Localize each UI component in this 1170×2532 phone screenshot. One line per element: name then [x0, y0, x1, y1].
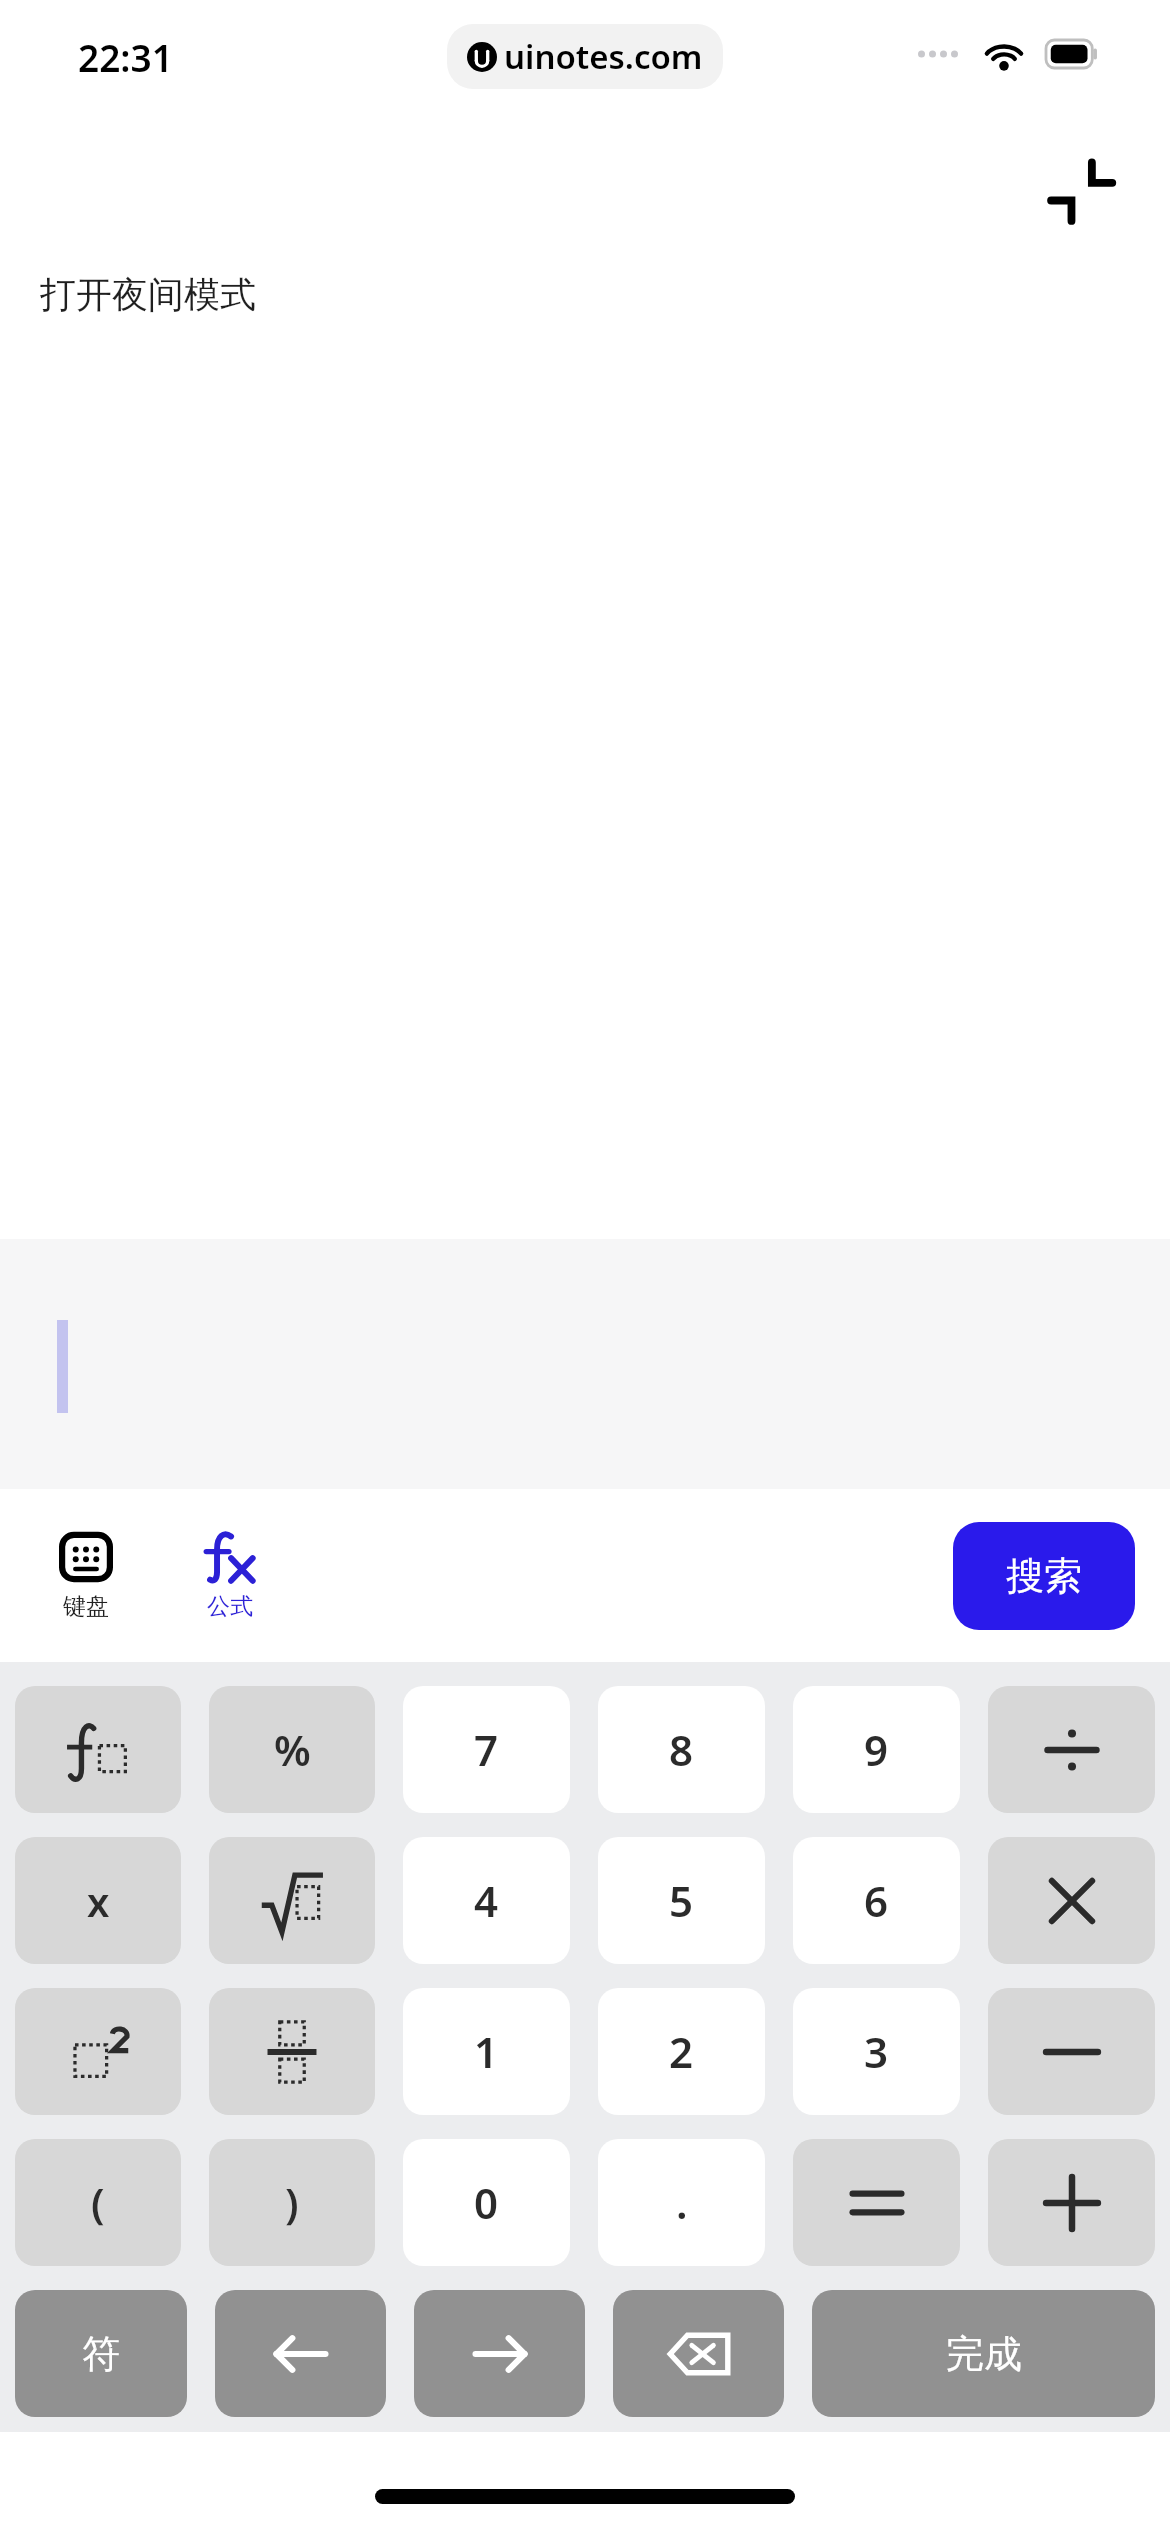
- button[interactable]: 4: [403, 1837, 570, 1964]
- button[interactable]: .: [598, 2139, 765, 2266]
- staticText: x: [87, 1874, 110, 1928]
- button[interactable]: 7: [403, 1686, 570, 1813]
- button[interactable]: 0: [403, 2139, 570, 2266]
- button[interactable]: 键盘: [36, 1526, 136, 1625]
- staticText: uinotes.com: [504, 34, 703, 79]
- staticText: %: [274, 1721, 311, 1778]
- staticText: 5: [669, 1872, 694, 1929]
- staticText: 打开夜间模式: [40, 272, 256, 317]
- button[interactable]: Divide: [988, 1686, 1155, 1813]
- button[interactable]: Minus: [988, 1988, 1155, 2115]
- staticText: 0: [474, 2174, 499, 2231]
- button[interactable]: 搜索: [953, 1522, 1135, 1630]
- button[interactable]: x: [15, 1837, 181, 1964]
- button[interactable]: Integral: [15, 1686, 181, 1813]
- button[interactable]: 完成: [812, 2290, 1155, 2417]
- button[interactable]: Left: [215, 2290, 386, 2417]
- staticText: (: [91, 2174, 105, 2231]
- staticText: 完成: [946, 2330, 1022, 2378]
- staticText: 键盘: [63, 1592, 109, 1621]
- button[interactable]: Multiply: [988, 1837, 1155, 1964]
- staticText: 符: [82, 2330, 120, 2378]
- button[interactable]: Collapse: [1038, 148, 1124, 234]
- button[interactable]: 8: [598, 1686, 765, 1813]
- button[interactable]: Backspace: [613, 2290, 784, 2417]
- staticText: 公式: [207, 1592, 253, 1621]
- staticText: 6: [864, 1872, 889, 1929]
- button[interactable]: 5: [598, 1837, 765, 1964]
- button[interactable]: 公式: [180, 1526, 280, 1625]
- staticText: 搜索: [1006, 1552, 1082, 1600]
- staticText: 9: [864, 1721, 889, 1778]
- staticText: 3: [864, 2023, 889, 2080]
- button[interactable]: 1: [403, 1988, 570, 2115]
- button[interactable]: Fraction: [209, 1988, 375, 2115]
- button[interactable]: Right: [414, 2290, 585, 2417]
- button[interactable]: %: [209, 1686, 375, 1813]
- button[interactable]: 3: [793, 1988, 960, 2115]
- staticText: 4: [474, 1872, 499, 1929]
- button[interactable]: 2: [598, 1988, 765, 2115]
- button[interactable]: Equals: [793, 2139, 960, 2266]
- button[interactable]: Square: [15, 1988, 181, 2115]
- button[interactable]: 6: [793, 1837, 960, 1964]
- staticText: 1: [474, 2023, 499, 2080]
- button[interactable]: ): [209, 2139, 375, 2266]
- button[interactable]: Square root: [209, 1837, 375, 1964]
- staticText: 7: [474, 1721, 499, 1778]
- staticText: 8: [669, 1721, 694, 1778]
- staticText: 22:31: [78, 32, 173, 82]
- button[interactable]: 9: [793, 1686, 960, 1813]
- staticText: 2: [669, 2023, 694, 2080]
- staticText: .: [676, 2174, 688, 2231]
- button[interactable]: Plus: [988, 2139, 1155, 2266]
- button[interactable]: [0, 1239, 1170, 1489]
- button[interactable]: 符: [15, 2290, 187, 2417]
- staticText: ): [285, 2174, 299, 2231]
- button[interactable]: (: [15, 2139, 181, 2266]
